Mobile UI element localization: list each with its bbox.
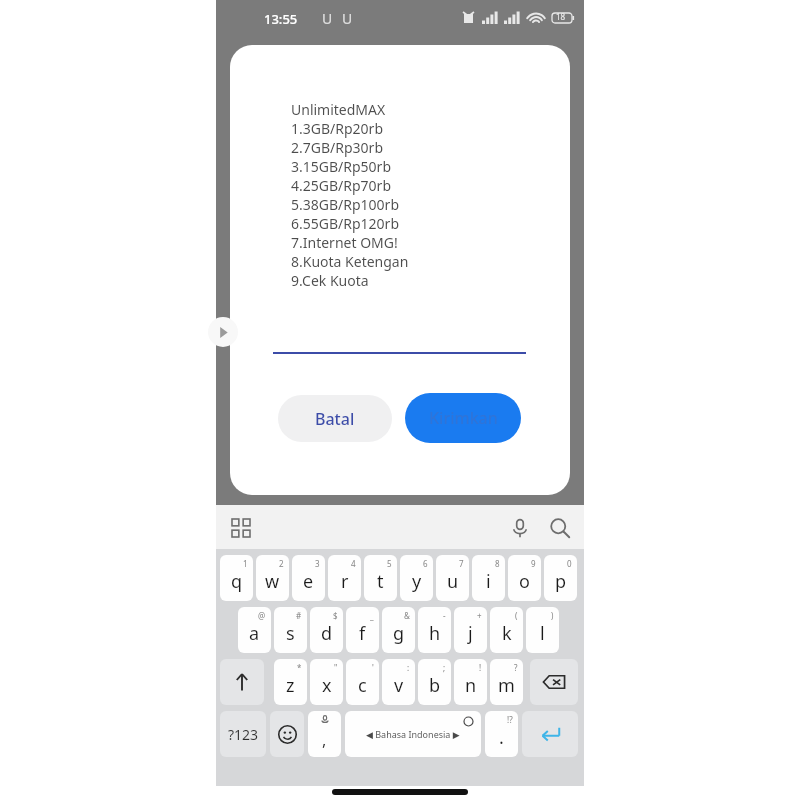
button[interactable]: 1 bbox=[220, 555, 253, 601]
staticText: v bbox=[394, 673, 404, 698]
staticText: r bbox=[341, 569, 349, 594]
staticText: UnlimitedMAX bbox=[291, 100, 386, 119]
staticText: n bbox=[465, 673, 477, 698]
button[interactable]: * bbox=[274, 659, 307, 705]
staticText: w bbox=[265, 569, 280, 594]
button[interactable]: Batal bbox=[278, 395, 392, 442]
staticText: 2 bbox=[279, 558, 284, 569]
staticText: " bbox=[334, 662, 338, 673]
staticText: 5 bbox=[387, 558, 392, 569]
staticText: !? bbox=[507, 714, 513, 725]
staticText: ( bbox=[515, 610, 518, 621]
button[interactable]: 4 bbox=[328, 555, 361, 601]
button[interactable]: Kirimkan bbox=[405, 393, 521, 443]
button[interactable]: ' bbox=[346, 659, 379, 705]
button[interactable]: $ bbox=[310, 607, 343, 653]
button[interactable]: : bbox=[382, 659, 415, 705]
button[interactable]: 6 bbox=[400, 555, 433, 601]
staticText: b bbox=[429, 673, 441, 698]
staticText: 4 bbox=[351, 558, 356, 569]
staticText: 7 bbox=[459, 558, 464, 569]
button[interactable]: 7 bbox=[436, 555, 469, 601]
button[interactable]: 8 bbox=[472, 555, 505, 601]
staticText: 2.7GB/Rp30rb bbox=[291, 138, 383, 157]
button[interactable]: Symbols bbox=[220, 711, 266, 757]
staticText: Batal bbox=[315, 408, 355, 430]
staticText: 0 bbox=[567, 558, 572, 569]
button[interactable]: 5 bbox=[364, 555, 397, 601]
staticText: f bbox=[359, 621, 366, 646]
staticText: . bbox=[499, 725, 504, 750]
button[interactable]: _ bbox=[346, 607, 379, 653]
staticText: m bbox=[498, 673, 515, 698]
staticText: 7.Internet OMG! bbox=[291, 233, 398, 252]
staticText: 3 bbox=[315, 558, 320, 569]
staticText: 8 bbox=[495, 558, 500, 569]
staticText: g bbox=[393, 621, 405, 646]
staticText: $ bbox=[333, 610, 338, 621]
button[interactable]: @ bbox=[238, 607, 271, 653]
staticText: k bbox=[502, 621, 512, 646]
staticText: 18 bbox=[556, 11, 566, 22]
button[interactable]: & bbox=[382, 607, 415, 653]
staticText: z bbox=[286, 673, 295, 698]
button[interactable]: 3 bbox=[292, 555, 325, 601]
button[interactable]: Open side panel bbox=[208, 317, 238, 347]
button[interactable]: + bbox=[454, 607, 487, 653]
button[interactable]: Enter bbox=[522, 711, 578, 757]
staticText: Kirimkan bbox=[429, 407, 498, 429]
staticText: & bbox=[404, 610, 410, 621]
button[interactable]: ; bbox=[418, 659, 451, 705]
staticText: : bbox=[407, 662, 410, 673]
button[interactable]: Search bbox=[549, 517, 571, 539]
staticText: e bbox=[303, 569, 314, 594]
staticText: 6.55GB/Rp120rb bbox=[291, 214, 400, 233]
staticText: ◀ Bahasa Indonesia ▶ bbox=[366, 728, 460, 740]
button[interactable]: !? bbox=[485, 711, 518, 757]
button[interactable]: " bbox=[310, 659, 343, 705]
staticText: ? bbox=[514, 662, 518, 673]
button[interactable]: ? bbox=[490, 659, 523, 705]
staticText: _ bbox=[370, 610, 374, 621]
staticText: ?123 bbox=[228, 725, 259, 744]
button[interactable]: Voice input bbox=[509, 517, 531, 539]
staticText: ) bbox=[551, 610, 554, 621]
button[interactable]: ) bbox=[526, 607, 559, 653]
button[interactable]: Emoji bbox=[270, 711, 304, 757]
staticText: - bbox=[443, 610, 446, 621]
staticText: l bbox=[540, 621, 545, 646]
button[interactable]: # bbox=[274, 607, 307, 653]
staticText: , bbox=[322, 729, 327, 751]
staticText: # bbox=[296, 610, 302, 621]
staticText: @ bbox=[258, 610, 266, 621]
button[interactable]: 2 bbox=[256, 555, 289, 601]
staticText: d bbox=[321, 621, 333, 646]
button[interactable]: ! bbox=[454, 659, 487, 705]
staticText: 5.38GB/Rp100rb bbox=[291, 195, 400, 214]
button[interactable]: , bbox=[308, 711, 341, 757]
staticText: ; bbox=[443, 662, 446, 673]
staticText: y bbox=[412, 569, 422, 594]
staticText: a bbox=[249, 621, 260, 646]
staticText: 8.Kuota Ketengan bbox=[291, 252, 409, 271]
staticText: U bbox=[342, 9, 353, 28]
staticText: 1.3GB/Rp20rb bbox=[291, 119, 383, 138]
button[interactable]: Toolbar bbox=[232, 519, 250, 537]
staticText: 6 bbox=[423, 558, 428, 569]
staticText: 13:55 bbox=[264, 10, 298, 28]
staticText: 9 bbox=[531, 558, 536, 569]
button[interactable]: ◀ Bahasa Indonesia ▶ bbox=[345, 711, 481, 757]
button[interactable]: - bbox=[418, 607, 451, 653]
button[interactable]: 0 bbox=[544, 555, 577, 601]
button[interactable]: 9 bbox=[508, 555, 541, 601]
staticText: 3.15GB/Rp50rb bbox=[291, 157, 392, 176]
staticText: U bbox=[322, 9, 333, 28]
button[interactable]: ( bbox=[490, 607, 523, 653]
staticText: h bbox=[429, 621, 441, 646]
staticText: t bbox=[377, 569, 384, 594]
staticText: + bbox=[477, 610, 482, 621]
button[interactable]: Shift bbox=[220, 659, 264, 705]
button[interactable]: Backspace bbox=[530, 659, 578, 705]
staticText: p bbox=[555, 569, 567, 594]
